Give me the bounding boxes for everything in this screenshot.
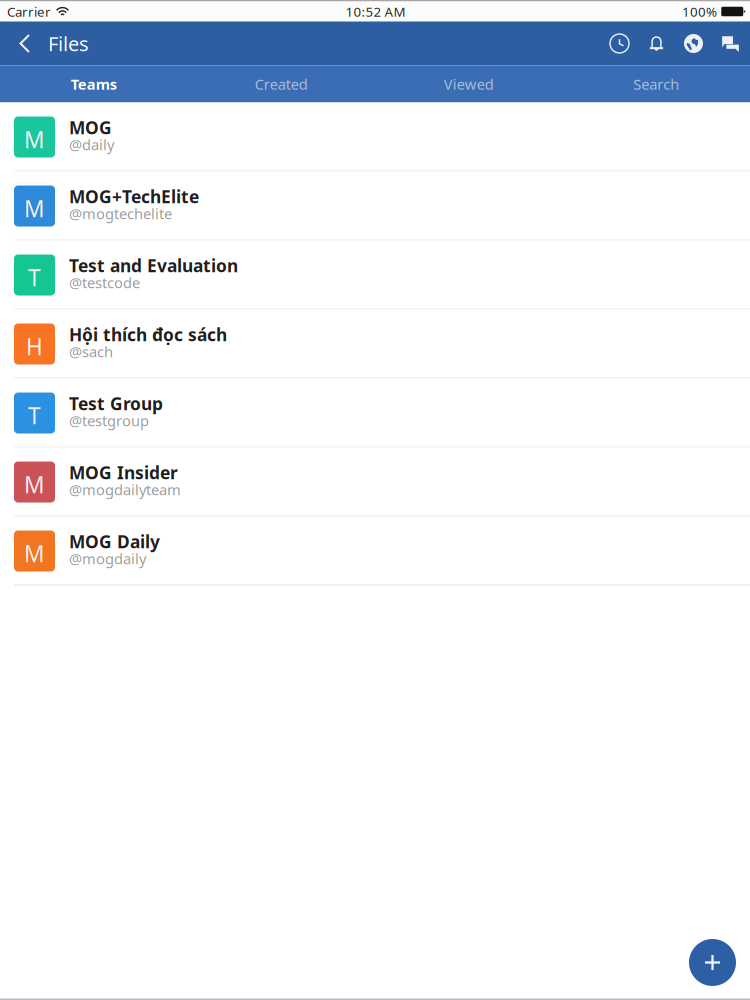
button[interactable]: T bbox=[0, 378, 750, 447]
staticText: MOG Insider bbox=[69, 461, 178, 484]
staticText: Created bbox=[255, 74, 308, 94]
staticText: T bbox=[28, 400, 41, 430]
staticText: 10:52 AM bbox=[345, 3, 405, 20]
button[interactable]: New team bbox=[689, 939, 736, 986]
staticText: M bbox=[24, 538, 45, 568]
staticText: Test and Evaluation bbox=[69, 254, 238, 277]
staticText: Viewed bbox=[444, 74, 494, 94]
button[interactable]: M bbox=[0, 102, 750, 171]
staticText: M bbox=[24, 193, 45, 223]
staticText: M bbox=[24, 469, 45, 499]
button[interactable]: M bbox=[0, 516, 750, 585]
staticText: @mogtechelite bbox=[69, 204, 172, 223]
staticText: Carrier bbox=[7, 3, 51, 20]
staticText: Test Group bbox=[69, 392, 163, 415]
staticText: @sach bbox=[69, 342, 113, 361]
button[interactable]: M bbox=[0, 447, 750, 516]
button[interactable]: Files bbox=[0, 21, 103, 65]
button[interactable]: Search bbox=[562, 65, 750, 102]
staticText: @testcode bbox=[69, 273, 140, 292]
staticText: Search bbox=[633, 74, 679, 94]
staticText: Hội thích đọc sách bbox=[69, 323, 227, 346]
button[interactable]: Teams bbox=[0, 65, 187, 102]
staticText: Teams bbox=[71, 74, 117, 94]
staticText: MOG Daily bbox=[69, 530, 160, 553]
button[interactable]: Created bbox=[187, 65, 375, 102]
staticText: MOG+TechElite bbox=[69, 185, 199, 208]
button[interactable]: Recent bbox=[610, 28, 629, 58]
button[interactable]: T bbox=[0, 240, 750, 309]
button[interactable]: Explore bbox=[684, 28, 703, 58]
staticText: MOG bbox=[69, 116, 112, 139]
staticText: @mogdailyteam bbox=[69, 480, 181, 499]
staticText: T bbox=[28, 262, 41, 292]
staticText: H bbox=[26, 331, 43, 361]
staticText: M bbox=[24, 124, 45, 154]
staticText: @testgroup bbox=[69, 411, 149, 430]
button[interactable]: Notifications bbox=[647, 28, 666, 58]
button[interactable]: M bbox=[0, 171, 750, 240]
staticText: Files bbox=[48, 30, 89, 57]
button[interactable]: Viewed bbox=[375, 65, 562, 102]
button[interactable]: H bbox=[0, 309, 750, 378]
staticText: @mogdaily bbox=[69, 549, 146, 568]
staticText: 100% bbox=[682, 3, 717, 20]
button[interactable]: Messages bbox=[721, 28, 740, 58]
staticText: @daily bbox=[69, 135, 114, 154]
